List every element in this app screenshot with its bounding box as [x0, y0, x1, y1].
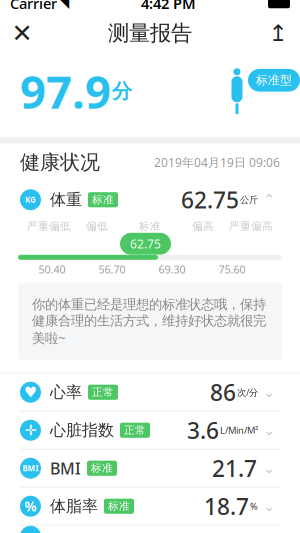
staticText: 62.75 [130, 236, 161, 252]
button[interactable]: BMI [0, 450, 300, 487]
staticText: 56.70 [98, 262, 125, 276]
staticText: 标准 [92, 193, 114, 206]
staticText: ⌃ [263, 191, 275, 208]
staticText: 你的体重已经是理想的标准状态哦，保持健康合理的生活方式，维持好状态就很完美啦~ [32, 296, 266, 347]
staticText: 标准 [108, 500, 130, 513]
staticText: 75.60 [218, 262, 245, 276]
button[interactable]: KG [0, 181, 300, 218]
button[interactable]: % [0, 488, 300, 525]
staticText: 体脂率 [50, 496, 98, 516]
staticText: 50.40 [38, 262, 65, 276]
staticText: 公斤 [240, 194, 258, 205]
staticText: ✛ [24, 422, 36, 438]
staticText: 心脏指数 [50, 420, 114, 440]
staticText: % [24, 497, 36, 515]
staticText: 86 [210, 377, 236, 407]
staticText: KG [25, 194, 36, 205]
staticText: L/Min/M² [220, 424, 258, 436]
staticText: ↥ [268, 20, 287, 46]
staticText: 偏低 [86, 220, 108, 233]
staticText: ✕ [11, 19, 32, 48]
button[interactable]: ♥ [0, 374, 300, 411]
button[interactable]: ✛ [0, 412, 300, 449]
staticText: 2019年04月19日 09:06 [154, 154, 280, 170]
button[interactable]: Close [0, 13, 44, 53]
staticText: 4:42 PM [141, 0, 196, 13]
staticText: 偏高 [192, 220, 214, 233]
staticText: ⌄ [263, 460, 275, 476]
staticText: 严重偏高 [229, 220, 273, 233]
staticText: 分 [112, 79, 132, 104]
staticText: 心率 [50, 382, 82, 402]
staticText: 标准型 [256, 73, 292, 88]
staticText: BMI [50, 458, 81, 479]
staticText: 体重 [50, 190, 82, 210]
staticText: 正常 [124, 424, 146, 437]
staticText: ⌄ [263, 384, 275, 400]
staticText: ◥ [60, 0, 69, 10]
staticText: 62.75 [181, 185, 239, 215]
staticText: ⌄ [263, 498, 275, 514]
staticText: 严重偏低 [27, 220, 71, 233]
staticText: ♥ [24, 384, 37, 400]
staticText: 18.7 [204, 491, 249, 521]
button[interactable]: Share [256, 13, 300, 53]
staticText: 69.30 [158, 262, 185, 276]
staticText: 97.9 [20, 61, 111, 121]
staticText: Carrier [10, 0, 57, 13]
staticText: % [250, 500, 258, 512]
staticText: 21.7 [212, 453, 257, 483]
staticText: BMI [22, 463, 38, 473]
staticText: ⌄ [263, 422, 275, 438]
staticText: 次/分 [237, 386, 258, 398]
staticText: 测量报告 [108, 20, 192, 46]
staticText: 健康状况 [20, 150, 100, 175]
staticText: 标准 [139, 220, 161, 233]
staticText: 3.6 [187, 415, 219, 445]
staticText: 标准 [91, 462, 113, 475]
staticText: 正常 [92, 386, 114, 399]
